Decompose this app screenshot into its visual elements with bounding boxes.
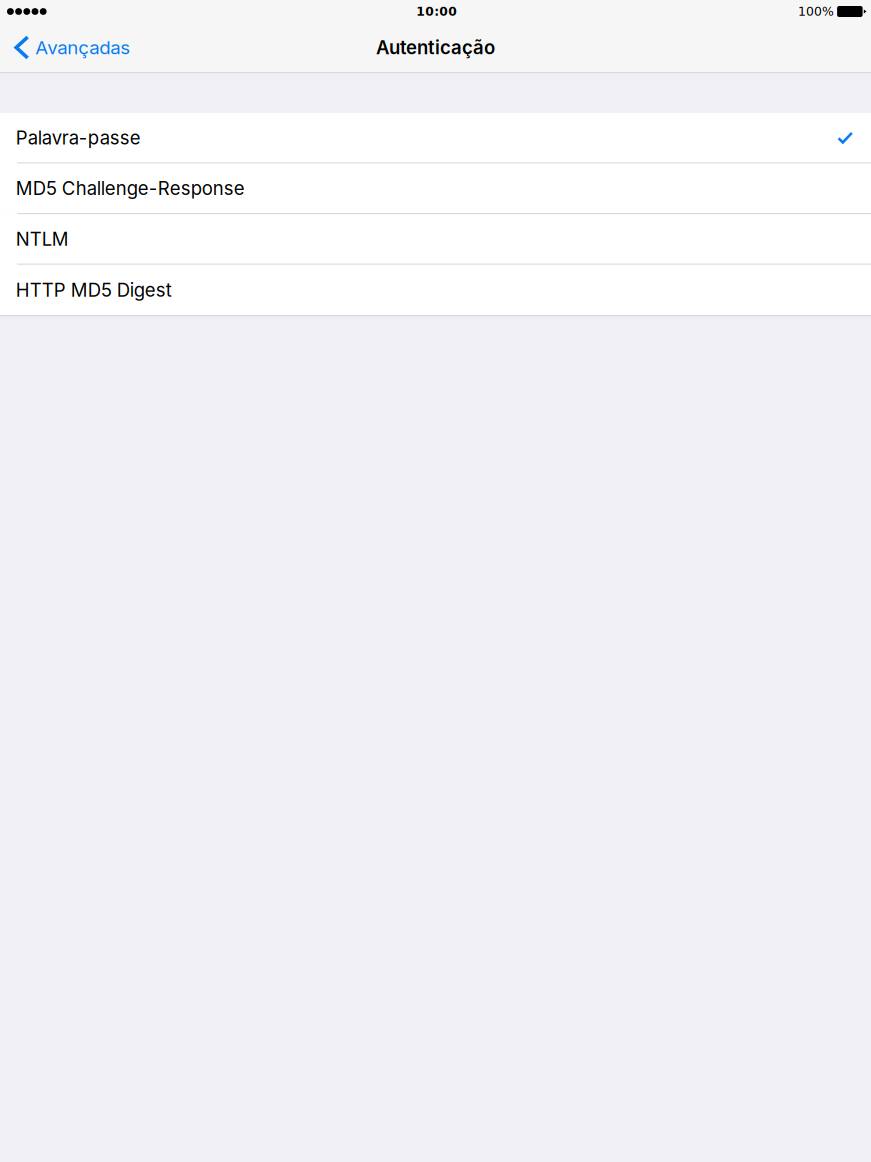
- staticText: Palavra-passe: [16, 126, 141, 149]
- button[interactable]: Palavra-passe: [0, 113, 871, 164]
- staticText: HTTP MD5 Digest: [16, 279, 172, 301]
- staticText: NTLM: [16, 228, 69, 250]
- staticText: Autenticação: [376, 36, 495, 59]
- staticText: 10:00: [416, 4, 457, 19]
- staticText: Avançadas: [35, 36, 130, 59]
- button[interactable]: NTLM: [0, 214, 871, 265]
- button[interactable]: MD5 Challenge-Response: [0, 164, 871, 214]
- button[interactable]: Avançadas: [0, 29, 142, 66]
- button[interactable]: HTTP MD5 Digest: [0, 265, 871, 315]
- staticText: MD5 Challenge-Response: [16, 177, 245, 199]
- staticText: 100%: [798, 4, 834, 19]
